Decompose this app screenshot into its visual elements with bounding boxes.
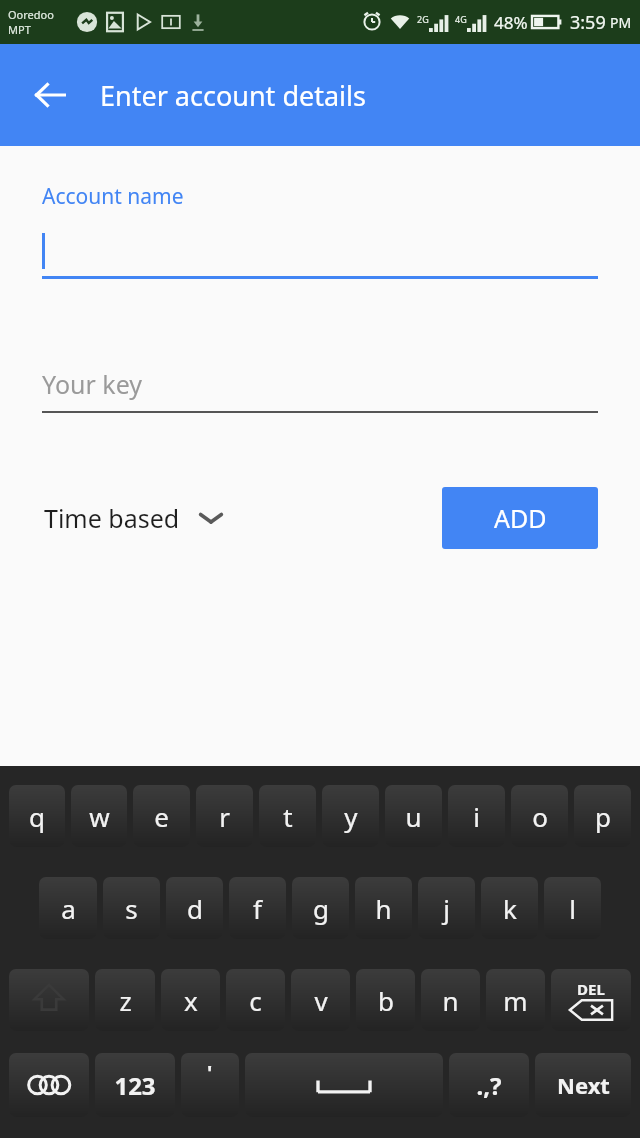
staticText: m [503,983,528,1018]
staticText: c [249,983,262,1018]
staticText: s [125,891,138,926]
button[interactable]: u [385,785,442,847]
staticText: l [569,891,576,926]
button[interactable]: f [229,877,286,939]
button[interactable]: b [356,969,415,1031]
staticText: 2G [417,13,429,25]
staticText: x [184,983,198,1018]
button[interactable]: .,? [449,1053,529,1117]
staticText: k [503,891,517,926]
staticText: y [344,799,358,834]
button[interactable]: g [292,877,349,939]
staticText: .,? [476,1069,502,1102]
button[interactable]: 123 [95,1053,175,1117]
button[interactable]: z [95,969,155,1031]
button[interactable] [42,223,598,279]
button[interactable]: Next [535,1053,631,1117]
button[interactable]: Your key [42,355,598,413]
staticText: h [375,891,392,926]
button[interactable]: n [421,969,480,1031]
button[interactable]: ADD [442,487,598,549]
button[interactable]: x [161,969,220,1031]
button[interactable]: i [448,785,505,847]
button[interactable]: o [511,785,568,847]
staticText: r [219,799,230,834]
button[interactable]: p [574,785,631,847]
button[interactable]: w [71,785,127,847]
staticText: PM [610,13,632,32]
staticText: z [119,983,132,1018]
button[interactable]: y [322,785,379,847]
button[interactable]: Time based [42,493,226,543]
button[interactable]: l [544,877,601,939]
button[interactable]: c [226,969,285,1031]
staticText: Next [557,1070,610,1100]
button[interactable]: v [291,969,350,1031]
button[interactable]: t [259,785,316,847]
staticText: i [473,799,480,834]
staticText: n [442,983,459,1018]
staticText: ' [207,1059,213,1086]
staticText: d [187,891,203,926]
staticText: g [313,891,329,926]
staticText: ADD [494,501,547,535]
staticText: v [314,983,328,1018]
button[interactable]: Apostrophe [181,1053,239,1117]
button[interactable]: s [103,877,160,939]
button[interactable]: Language [9,1053,89,1117]
button[interactable]: d [166,877,223,939]
staticText: Time based [44,501,180,535]
button[interactable]: r [196,785,253,847]
staticText: MPT [8,22,31,37]
button[interactable]: a [39,877,97,939]
staticText: t [283,799,293,834]
staticText: Enter account details [100,77,366,114]
button[interactable]: h [355,877,412,939]
button[interactable]: Back [18,63,82,127]
button[interactable]: k [481,877,538,939]
staticText: o [532,799,548,834]
staticText: u [405,799,422,834]
staticText: DEL [577,979,605,999]
staticText: b [378,983,394,1018]
staticText: 3:59 [570,10,606,35]
button[interactable]: m [486,969,545,1031]
staticText: 48% [494,11,528,34]
button[interactable]: j [418,877,475,939]
button[interactable]: q [9,785,65,847]
staticText: Account name [42,182,184,211]
button[interactable]: e [133,785,190,847]
staticText: q [29,799,45,834]
staticText: j [443,891,450,926]
staticText: f [253,891,262,926]
staticText: 4G [455,13,467,25]
staticText: Ooredoo [8,7,54,22]
staticText: a [61,891,76,926]
button[interactable]: Delete [551,969,631,1031]
button[interactable]: Shift [9,969,89,1031]
staticText: e [154,799,169,834]
staticText: w [89,799,110,834]
staticText: p [595,799,611,834]
staticText: Your key [42,367,143,401]
button[interactable]: Space [245,1053,443,1117]
staticText: 123 [114,1069,156,1102]
